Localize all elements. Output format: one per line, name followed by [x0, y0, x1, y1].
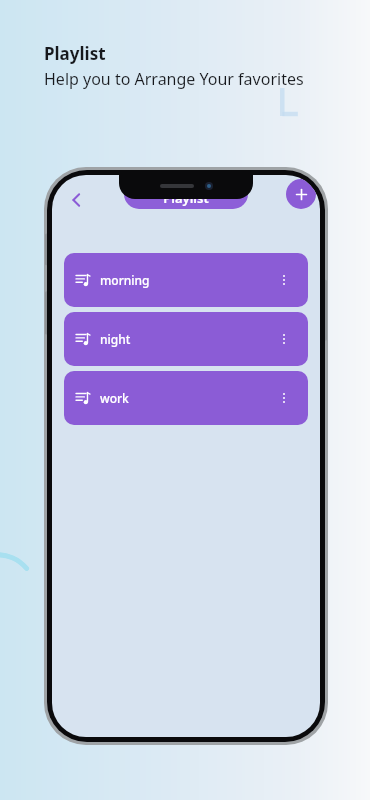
staticText: morning — [100, 272, 150, 288]
staticText: night — [100, 331, 131, 347]
button[interactable]: work — [64, 371, 308, 425]
button[interactable]: night — [64, 312, 308, 366]
button[interactable]: Back — [60, 183, 94, 217]
button[interactable]: morning — [64, 253, 308, 307]
button[interactable]: Add playlist — [286, 179, 316, 209]
button[interactable]: More options for morning — [272, 268, 296, 292]
staticText: Help you to Arrange Your favorites — [44, 68, 304, 90]
button[interactable]: More options for work — [272, 386, 296, 410]
staticText: Playlist — [44, 42, 106, 65]
staticText: work — [100, 390, 129, 406]
button[interactable]: More options for night — [272, 327, 296, 351]
staticText: Playlist — [163, 189, 209, 207]
